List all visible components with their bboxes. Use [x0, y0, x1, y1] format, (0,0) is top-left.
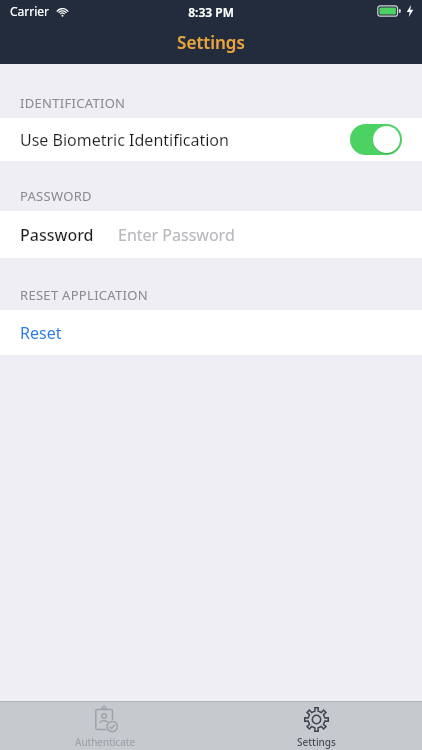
button[interactable]: Password: [0, 211, 422, 258]
other: Authenticate: [92, 706, 119, 733]
other: Settings: [303, 706, 330, 733]
button[interactable]: Settings: [211, 701, 422, 750]
staticText: 8:33 PM: [0, 4, 422, 20]
staticText: Reset: [20, 322, 62, 344]
button[interactable]: Use Biometric Identification toggle: [350, 124, 402, 155]
staticText: Use Biometric Identification: [20, 129, 229, 151]
staticText: IDENTIFICATION: [20, 94, 126, 112]
button[interactable]: Reset: [0, 310, 422, 355]
staticText: RESET APPLICATION: [20, 286, 148, 304]
staticText: Enter Password: [118, 224, 235, 246]
staticText: PASSWORD: [20, 187, 92, 205]
staticText: Settings: [0, 31, 422, 54]
button[interactable]: Authenticate: [0, 701, 211, 750]
staticText: Carrier: [10, 3, 50, 19]
button[interactable]: Use Biometric Identification: [0, 118, 422, 161]
staticText: Password: [20, 224, 94, 246]
staticText: Settings: [297, 735, 336, 749]
staticText: Authenticate: [75, 735, 136, 749]
